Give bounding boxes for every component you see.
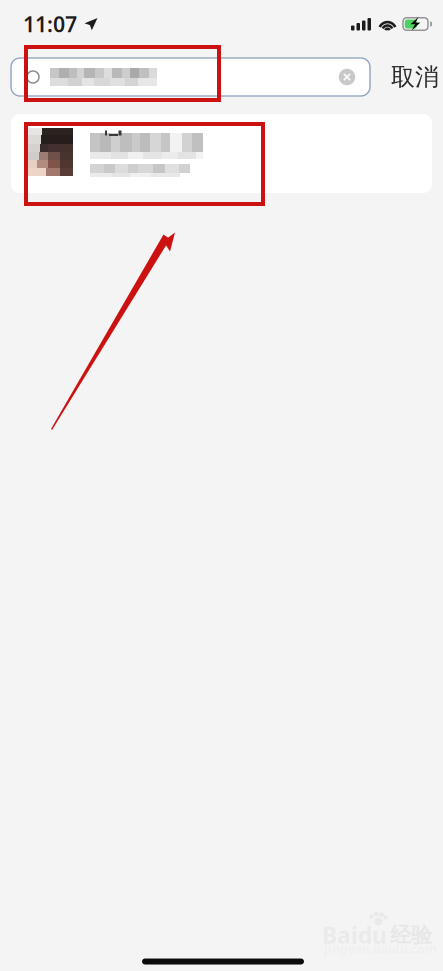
staticText: 11:07 <box>23 10 77 38</box>
button[interactable] <box>11 114 432 193</box>
button[interactable]: Clear search text <box>333 60 361 94</box>
staticText: jingyan.baidu.com <box>324 941 437 957</box>
staticText: 取消 <box>391 62 439 92</box>
button[interactable]: 取消 <box>389 58 441 96</box>
staticText: 经验 <box>390 922 432 948</box>
staticText: Baidu <box>322 920 387 950</box>
